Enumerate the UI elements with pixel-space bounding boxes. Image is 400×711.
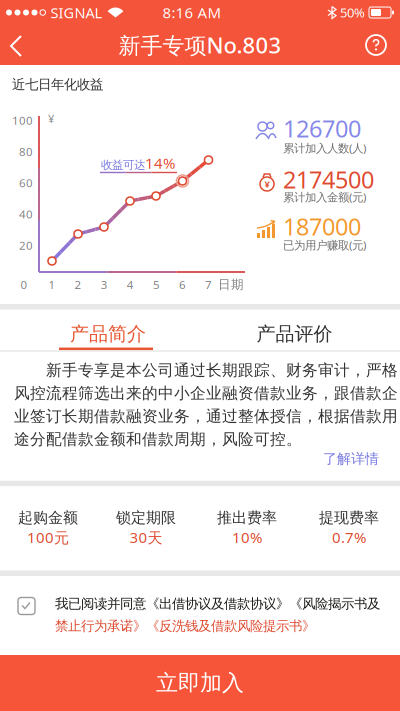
staticText: 40 (19, 206, 33, 222)
staticText: 禁止行为承诺》《反洗钱及借款风险提示书》 (55, 618, 315, 635)
staticText: 近七日年化收益 (12, 76, 103, 93)
button[interactable]: Help (366, 35, 400, 55)
staticText: 126700 (283, 112, 361, 144)
staticText: 收益可达 (101, 158, 145, 172)
staticText: 10% (232, 527, 262, 547)
staticText: 累计加入人数(人) (283, 140, 366, 156)
staticText: 0.7% (332, 527, 366, 547)
staticText: 业签订长期借款融资业务，通过整体授信，根据借款用 (14, 406, 398, 426)
staticText: 我已阅读并同意《出借协议及借款协议》《风险揭示书及 (55, 595, 380, 612)
button[interactable]: Back (0, 32, 24, 58)
staticText: 已为用户赚取(元) (283, 237, 366, 253)
button[interactable]: 产品简介 (0, 309, 200, 351)
staticText: 4 (127, 277, 134, 292)
staticText: 2 (75, 277, 82, 292)
staticText: 20 (19, 237, 33, 253)
staticText: 60 (19, 175, 33, 191)
staticText: 5 (153, 277, 160, 292)
staticText: 推出费率 (217, 508, 277, 527)
staticText: 7 (205, 277, 212, 292)
staticText: 14% (145, 153, 175, 173)
staticText: ¥ (48, 111, 54, 126)
staticText: 锁定期限 (116, 508, 176, 527)
staticText: 187000 (283, 210, 361, 242)
button[interactable]: 了解详情 (323, 450, 400, 468)
staticText: 了解详情 (323, 450, 379, 468)
button[interactable]: 同意协议 (0, 595, 35, 614)
staticText: 累计加入金额(元) (283, 189, 366, 205)
staticText: 3 (101, 277, 108, 292)
button[interactable]: 产品评价 (200, 309, 400, 351)
staticText: 8:16 AM (162, 2, 221, 23)
staticText: 日期 (218, 277, 244, 292)
staticText: 新手专项No.803 (118, 30, 281, 60)
staticText: 新手专享是本公司通过长期跟踪、财务审计，严格 (14, 360, 398, 380)
staticText: 6 (179, 277, 186, 292)
button[interactable]: 立即加入 (0, 655, 400, 711)
staticText: 途分配借款金额和借款周期，风险可控。 (14, 429, 302, 449)
staticText: 80 (19, 144, 33, 159)
staticText: 30天 (129, 527, 162, 547)
staticText: 2174500 (283, 163, 374, 195)
staticText: 立即加入 (156, 669, 244, 697)
staticText: 100元 (27, 527, 69, 547)
staticText: 产品评价 (256, 322, 332, 346)
staticText: 100 (12, 113, 33, 128)
staticText: ¥ (264, 178, 269, 190)
staticText: 提现费率 (319, 508, 379, 527)
staticText: SIGNAL (50, 3, 102, 22)
staticText: 50% (340, 4, 365, 21)
staticText: 起购金额 (18, 508, 78, 527)
staticText: 0 (20, 277, 27, 292)
staticText: 1 (48, 277, 55, 292)
staticText: 产品简介 (70, 322, 146, 346)
staticText: 风控流程筛选出来的中小企业融资借款业务，跟借款企 (14, 383, 398, 403)
